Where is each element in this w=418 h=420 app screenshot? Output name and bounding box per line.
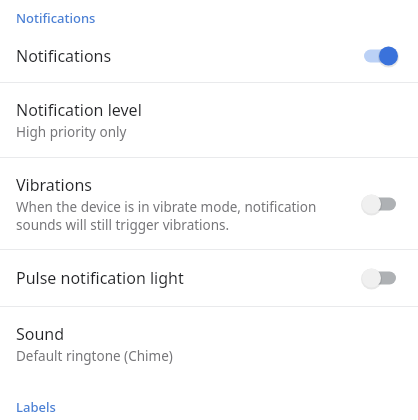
staticText: Pulse notification light bbox=[16, 267, 350, 289]
staticText: Vibrations bbox=[16, 174, 92, 196]
staticText: High priority only bbox=[16, 123, 127, 141]
staticText: When the device is in vibrate mode, noti… bbox=[16, 198, 317, 234]
staticText: Default ringtone (Chime) bbox=[16, 347, 173, 365]
button[interactable]: Pulse notification light, off bbox=[358, 265, 402, 291]
staticText: Notifications bbox=[16, 9, 96, 27]
button[interactable]: Pulse notification light bbox=[0, 250, 418, 306]
button[interactable]: Vibrations bbox=[0, 158, 418, 249]
button[interactable]: Notifications bbox=[0, 30, 418, 82]
staticText: Notification level bbox=[16, 99, 142, 121]
button[interactable]: Sound bbox=[0, 307, 418, 381]
staticText: Notifications bbox=[16, 45, 350, 67]
button[interactable]: Vibrations, off bbox=[358, 191, 402, 217]
button[interactable]: Notifications, on bbox=[358, 43, 402, 69]
staticText: Labels bbox=[16, 398, 56, 416]
staticText: Sound bbox=[16, 323, 65, 345]
button[interactable]: Notification level bbox=[0, 83, 418, 157]
